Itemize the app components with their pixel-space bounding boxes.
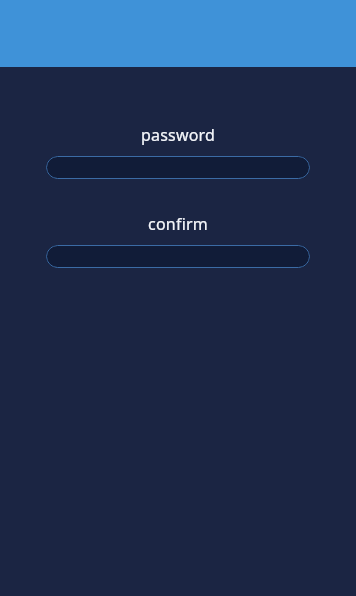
button[interactable]: Confirm password input field xyxy=(46,245,310,268)
button[interactable]: Password input field xyxy=(46,156,310,179)
staticText: confirm xyxy=(0,213,356,235)
staticText: password xyxy=(0,124,356,146)
